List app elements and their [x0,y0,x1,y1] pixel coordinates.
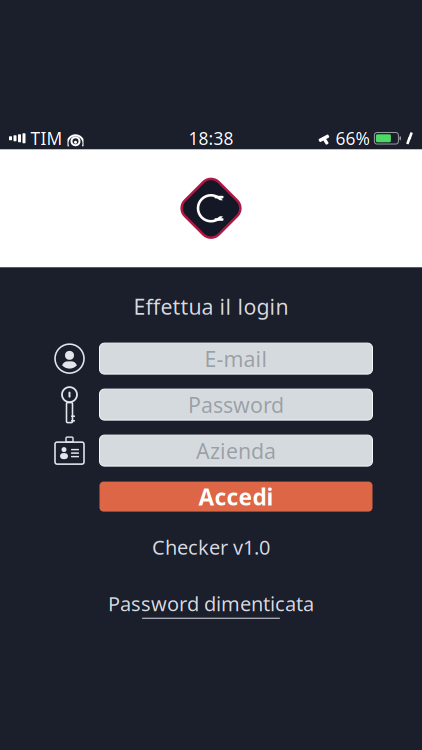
staticText: E-mail [204,344,267,373]
staticText: Checker v1.0 [152,534,270,560]
button[interactable]: Accedi [99,482,372,512]
staticText: Effettua il login [133,292,288,321]
staticText: 18:38 [188,127,233,150]
button[interactable]: Password [99,389,372,420]
staticText: Azienda [196,436,276,465]
staticText: TIM [30,127,62,150]
staticText: Password [188,390,284,419]
staticText: Password dimenticata [108,590,314,617]
button[interactable]: Azienda [99,435,372,466]
staticText: 66% [335,127,369,150]
button[interactable]: Password dimenticata [102,586,320,623]
button[interactable]: E-mail [99,343,372,374]
staticText: Accedi [198,482,273,512]
